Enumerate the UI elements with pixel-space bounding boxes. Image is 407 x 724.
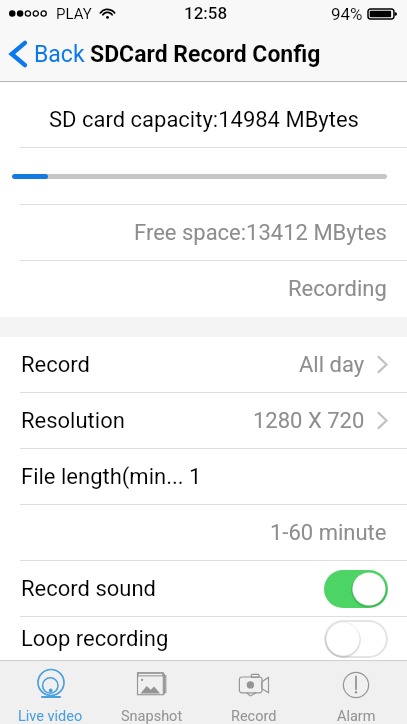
staticText: Live video (18, 708, 83, 724)
staticText: Snapshot (121, 708, 183, 724)
button[interactable]: Record (203, 661, 305, 724)
staticText: 12:58 (184, 3, 228, 23)
staticText: 1-60 minute (270, 520, 387, 546)
button[interactable]: Alarm (305, 661, 407, 724)
button[interactable]: Back (0, 30, 85, 82)
staticText: All day (299, 352, 365, 378)
staticText: Record (21, 352, 90, 378)
staticText: SDCard Record Config (90, 41, 321, 68)
button[interactable]: Resolution (0, 393, 407, 448)
button[interactable]: Live video (0, 661, 101, 724)
button[interactable]: File length(min... 1 (0, 449, 407, 504)
button[interactable]: Snapshot (101, 661, 203, 724)
staticText: Free space:13412 MBytes (134, 220, 387, 246)
button[interactable]: Record (0, 337, 407, 392)
staticText: 1280 X 720 (253, 408, 365, 434)
staticText: Resolution (21, 408, 125, 434)
button[interactable]: Record sound (0, 561, 407, 616)
staticText: File length(min... 1 (21, 464, 202, 490)
staticText: Record (231, 708, 277, 724)
staticText: Recording (288, 276, 387, 302)
staticText: SD card capacity:14984 MBytes (49, 107, 359, 133)
staticText: Loop recording (21, 626, 169, 652)
button[interactable]: Switch on (324, 570, 388, 608)
button[interactable]: Switch off (324, 620, 388, 658)
staticText: Record sound (21, 576, 156, 602)
staticText: 94% (331, 4, 363, 24)
staticText: PLAY (56, 5, 92, 23)
staticText: Alarm (337, 708, 376, 724)
staticText: Back (34, 41, 85, 68)
button[interactable]: Loop recording (0, 617, 407, 660)
